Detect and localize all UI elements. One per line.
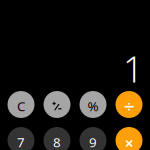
- button[interactable]: Divide: [115, 91, 142, 118]
- staticText: 9: [89, 133, 97, 150]
- button[interactable]: Plus Minus: [43, 91, 70, 118]
- button[interactable]: 9: [79, 127, 106, 150]
- button[interactable]: %: [79, 91, 106, 118]
- button[interactable]: C: [7, 91, 34, 118]
- staticText: %: [87, 97, 98, 115]
- button[interactable]: 8: [43, 127, 70, 150]
- staticText: 1: [123, 45, 144, 92]
- button[interactable]: 7: [7, 127, 34, 150]
- staticText: C: [17, 97, 25, 115]
- staticText: 7: [17, 133, 25, 150]
- staticText: 8: [53, 133, 61, 150]
- button[interactable]: Multiply: [115, 127, 142, 150]
